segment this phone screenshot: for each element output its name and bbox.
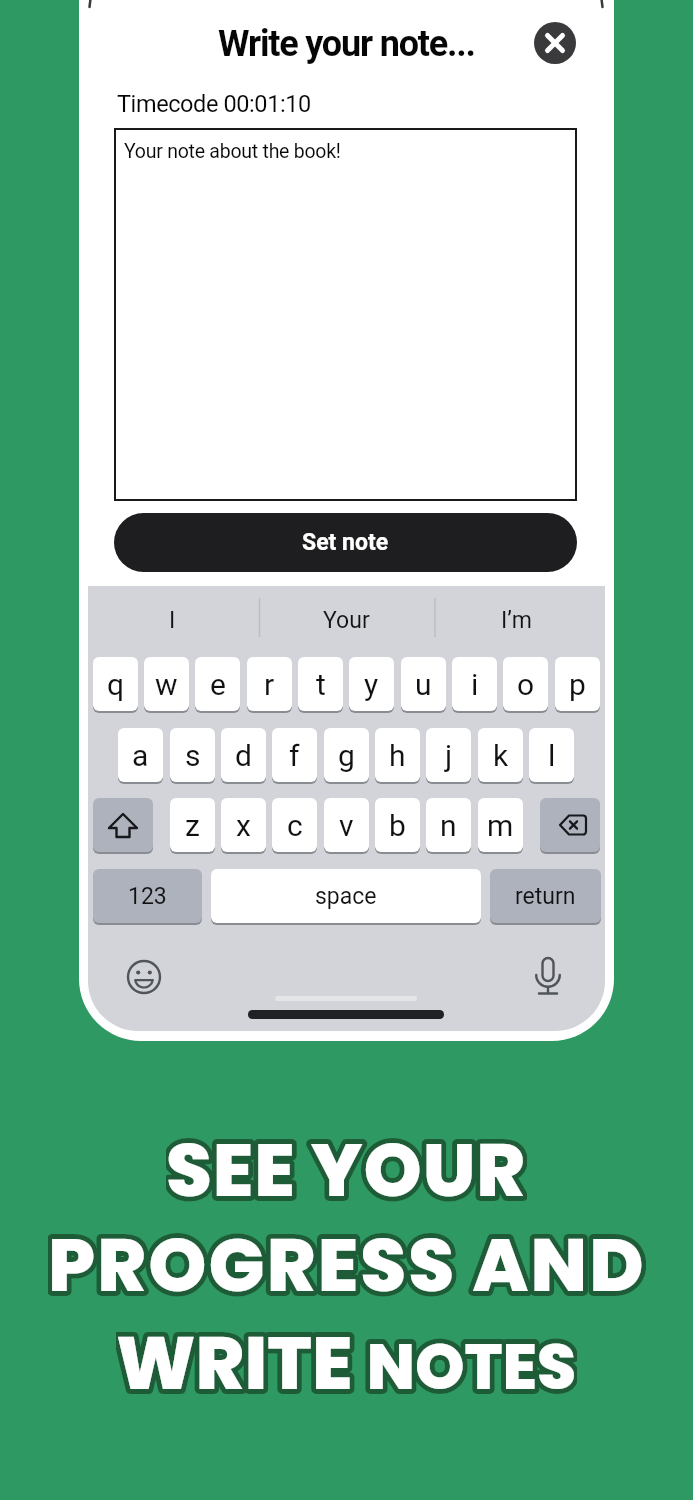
button[interactable]: s (170, 728, 215, 782)
staticText: n (440, 808, 457, 843)
button[interactable]: Set note (114, 513, 577, 572)
staticText: p (569, 667, 586, 702)
button[interactable]: Your note about the book! (114, 128, 577, 501)
staticText: j (445, 738, 453, 773)
staticText: return (515, 883, 576, 910)
button[interactable]: I (92, 592, 252, 648)
button[interactable]: o (503, 657, 548, 711)
button[interactable]: e (195, 657, 240, 711)
staticText: I (169, 607, 176, 634)
staticText: b (389, 808, 406, 843)
staticText: WRITE NOTES (116, 1311, 577, 1411)
button[interactable]: t (298, 657, 343, 711)
button[interactable]: i (452, 657, 497, 711)
staticText: PROGRESS AND (48, 1213, 646, 1313)
button[interactable]: I’m (436, 592, 596, 648)
button[interactable] (93, 798, 153, 852)
button[interactable]: j (426, 728, 471, 782)
button[interactable]: u (401, 657, 446, 711)
button[interactable] (534, 22, 576, 64)
staticText: q (107, 667, 125, 702)
button[interactable]: l (529, 728, 574, 782)
button[interactable]: z (170, 798, 215, 852)
button[interactable]: p (555, 657, 600, 711)
staticText: h (389, 738, 406, 773)
button[interactable]: n (426, 798, 471, 852)
button[interactable]: m (478, 798, 523, 852)
staticText: space (315, 883, 377, 910)
staticText: o (517, 667, 535, 702)
button[interactable]: c (272, 798, 317, 852)
button[interactable]: v (324, 798, 369, 852)
button[interactable]: space (211, 869, 481, 923)
staticText: SEE YOUR (166, 1118, 527, 1218)
button[interactable]: w (144, 657, 189, 711)
staticText: e (210, 667, 226, 702)
button[interactable]: k (478, 728, 523, 782)
button[interactable]: g (324, 728, 369, 782)
staticText: I’m (501, 607, 532, 634)
staticText: Your note about the book! (124, 140, 341, 163)
staticText: d (235, 738, 252, 773)
button[interactable]: d (221, 728, 266, 782)
staticText: w (155, 667, 178, 702)
staticText: f (289, 738, 300, 773)
button[interactable]: 123 (93, 869, 202, 923)
staticText: Write your note... (218, 23, 475, 65)
staticText: i (471, 667, 479, 702)
staticText: y (364, 667, 379, 702)
staticText: v (339, 808, 354, 843)
button[interactable]: return (490, 869, 601, 923)
button[interactable]: x (221, 798, 266, 852)
staticText: z (185, 808, 200, 843)
button[interactable]: h (375, 728, 420, 782)
button[interactable]: q (93, 657, 138, 711)
staticText: l (548, 738, 556, 773)
staticText: m (487, 808, 514, 843)
button[interactable]: y (349, 657, 394, 711)
staticText: a (132, 738, 149, 773)
staticText: c (287, 808, 303, 843)
button[interactable]: Your (266, 592, 426, 648)
staticText: Your (323, 607, 370, 634)
staticText: SEE YOUR (166, 1118, 527, 1218)
button[interactable]: f (272, 728, 317, 782)
button[interactable]: a (118, 728, 163, 782)
staticText: u (415, 667, 432, 702)
staticText: WRITE NOTES (116, 1311, 577, 1411)
button[interactable] (540, 798, 600, 852)
button[interactable]: b (375, 798, 420, 852)
staticText: r (264, 667, 275, 702)
button[interactable]: r (247, 657, 292, 711)
staticText: PROGRESS AND (48, 1213, 646, 1313)
staticText: 123 (128, 883, 167, 910)
staticText: x (236, 808, 251, 843)
staticText: g (338, 738, 355, 773)
staticText: k (493, 738, 509, 773)
staticText: s (185, 738, 201, 773)
staticText: t (316, 667, 326, 702)
staticText: Timecode 00:01:10 (117, 90, 311, 118)
staticText: Set note (302, 529, 389, 556)
